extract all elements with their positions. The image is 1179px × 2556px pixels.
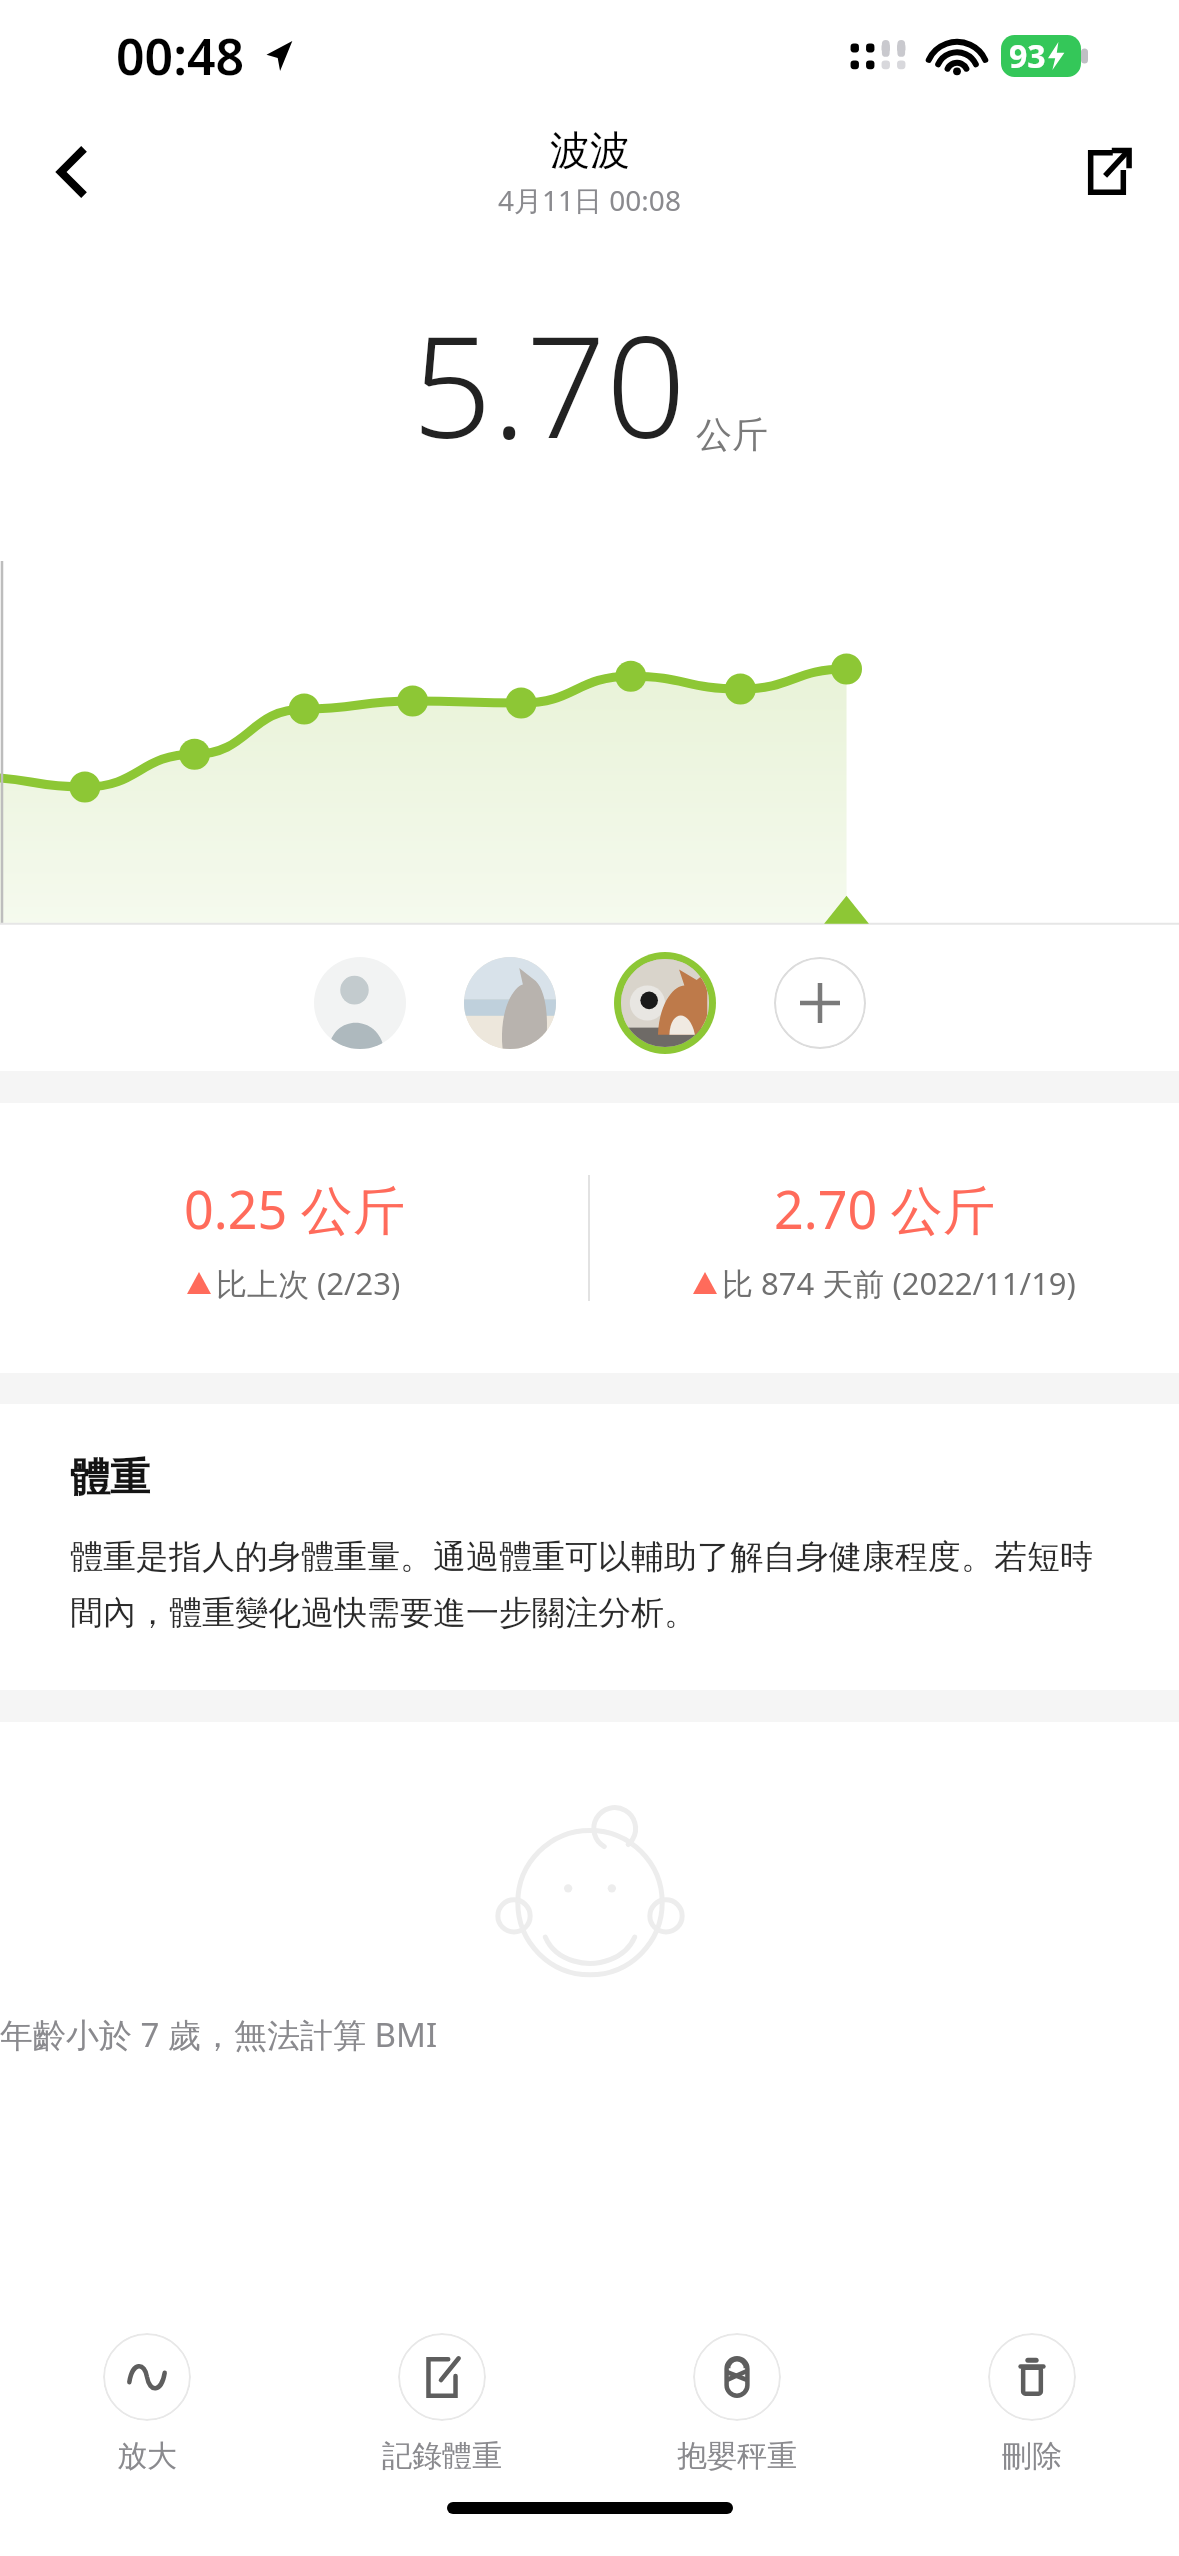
staticText: 比 874 天前 (2022/11/19)	[722, 1262, 1076, 1304]
button[interactable]: 2.70 公斤	[590, 1103, 1179, 1373]
staticText: 4月11日 00:08	[498, 181, 681, 219]
staticText: 體重是指人的身體重量。通過體重可以輔助了解自身健康程度。若短時間內，體重變化過快…	[70, 1536, 1119, 1634]
button[interactable]: Share	[1059, 124, 1155, 220]
button[interactable]: 放大	[0, 2314, 294, 2494]
staticText: 抱嬰秤重	[677, 2437, 797, 2475]
staticText: 體重	[70, 1452, 150, 1502]
staticText: 記錄體重	[382, 2437, 502, 2475]
staticText: 2.70 公斤	[774, 1173, 995, 1244]
staticText: 5.70	[412, 288, 686, 479]
button[interactable]: Add profile	[774, 957, 866, 1049]
button[interactable]: 刪除	[884, 2314, 1179, 2494]
staticText: 年齡小於 7 歲，無法計算 BMI	[0, 2012, 1179, 2057]
button[interactable]: 記錄體重	[294, 2314, 589, 2494]
staticText: 00:48	[116, 22, 245, 90]
button[interactable]: 0.25 公斤	[0, 1103, 588, 1373]
staticText: 比上次 (2/23)	[216, 1262, 401, 1304]
staticText: 放大	[117, 2437, 177, 2475]
staticText: 0.25 公斤	[184, 1173, 405, 1244]
button[interactable]: Profile	[314, 957, 406, 1049]
staticText: 93	[1009, 34, 1046, 78]
button[interactable]: Selected pet	[614, 952, 716, 1054]
staticText: 公斤	[696, 412, 768, 457]
staticText: 波波	[550, 125, 630, 175]
button[interactable]: Pet profile	[464, 957, 556, 1049]
button[interactable]: 抱嬰秤重	[589, 2314, 884, 2494]
button[interactable]: Back	[24, 124, 120, 220]
staticText: 刪除	[1002, 2437, 1062, 2475]
